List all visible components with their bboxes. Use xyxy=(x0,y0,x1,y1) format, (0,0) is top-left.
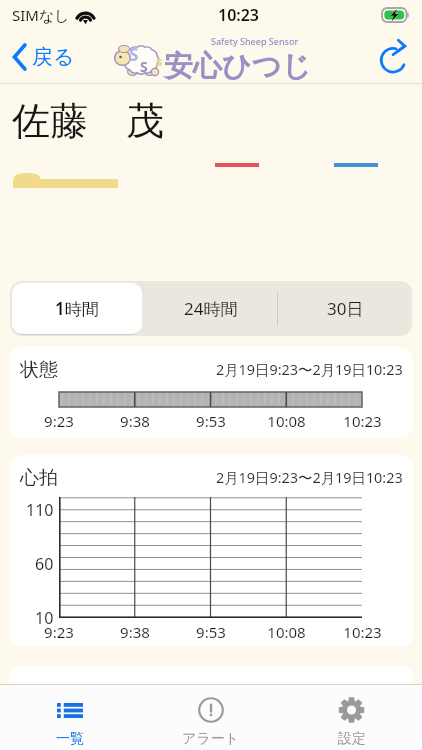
staticText: 戻る xyxy=(32,44,75,70)
staticText: 10 xyxy=(35,607,54,627)
staticText: 30日 xyxy=(327,297,364,320)
staticText: 9:23 xyxy=(44,411,74,431)
staticText: 状態 xyxy=(20,358,58,382)
button[interactable]: Refresh xyxy=(372,35,416,79)
staticText: Safety Sheep Sensor xyxy=(211,35,299,47)
staticText: 心拍 xyxy=(20,466,58,490)
staticText: 安心ひつじ xyxy=(164,48,312,85)
staticText: アラート xyxy=(182,730,239,748)
staticText: S xyxy=(129,43,139,66)
staticText: 1時間 xyxy=(55,297,99,320)
staticText: 2月19日9:23〜2月19日10:23 xyxy=(216,468,403,488)
staticText: S xyxy=(140,57,148,76)
staticText: 一覧 xyxy=(56,730,84,748)
staticText: 60 xyxy=(35,553,54,573)
staticText: 10:08 xyxy=(267,411,306,431)
button[interactable]: アラート xyxy=(140,684,281,750)
staticText: 10:08 xyxy=(267,622,306,642)
staticText: 9:23 xyxy=(44,622,74,642)
staticText: 9:38 xyxy=(120,622,150,642)
button[interactable]: 30日 xyxy=(278,281,412,336)
staticText: 9:53 xyxy=(196,622,226,642)
staticText: 設定 xyxy=(338,730,366,748)
staticText: 24時間 xyxy=(184,297,238,320)
staticText: 2月19日9:23〜2月19日10:23 xyxy=(216,360,403,380)
staticText: 佐藤 茂 xyxy=(12,93,164,145)
button[interactable]: 一覧 xyxy=(0,684,140,750)
staticText: 10:23 xyxy=(218,4,260,26)
button[interactable]: 設定 xyxy=(281,684,422,750)
button[interactable]: 24時間 xyxy=(144,281,278,336)
staticText: SIMなし xyxy=(12,5,70,25)
staticText: 9:53 xyxy=(196,411,226,431)
button[interactable]: 戻る xyxy=(8,30,79,84)
staticText: s xyxy=(156,52,163,70)
staticText: 10:23 xyxy=(343,622,382,642)
staticText: 9:38 xyxy=(120,411,150,431)
staticText: 10:23 xyxy=(343,411,382,431)
staticText: 110 xyxy=(26,499,54,519)
button[interactable]: 1時間 xyxy=(12,283,142,334)
